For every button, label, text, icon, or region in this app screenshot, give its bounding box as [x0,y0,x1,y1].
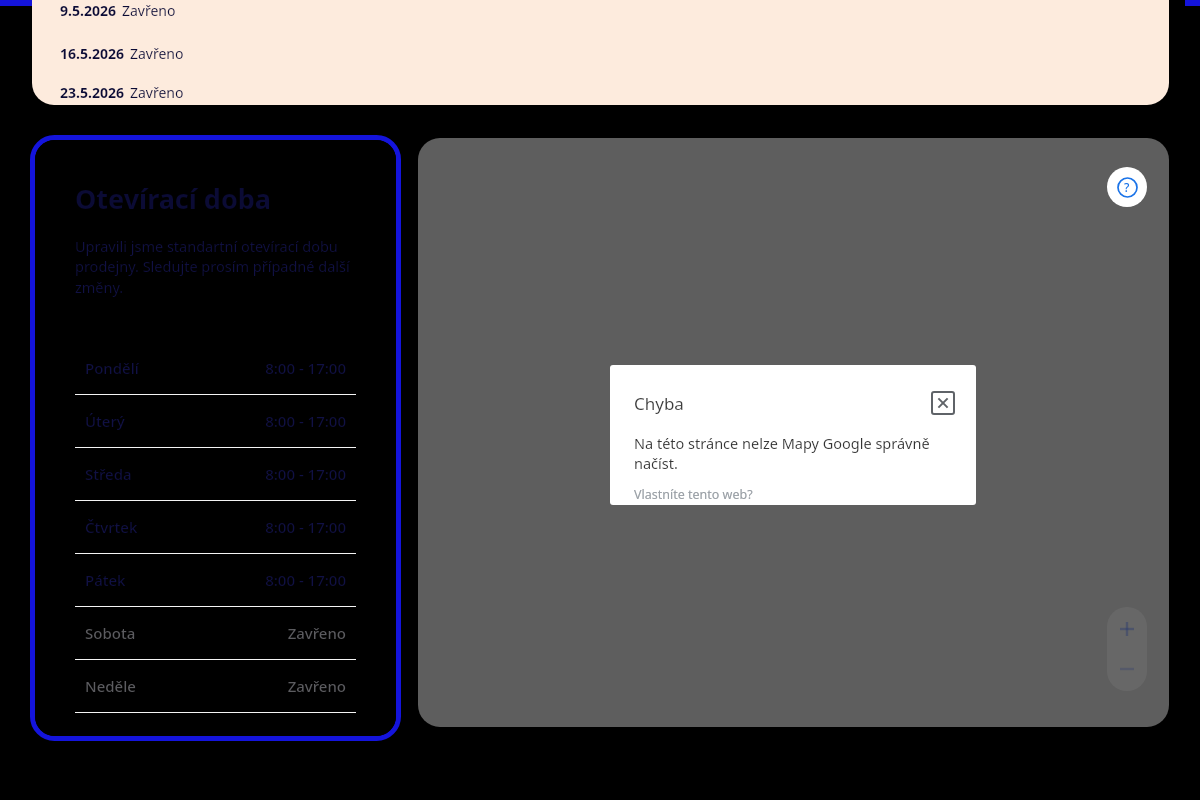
button[interactable]: Pátek [75,554,356,606]
button[interactable]: Help [1107,167,1147,207]
staticText: Pondělí [85,358,265,378]
staticText: Zavřeno [122,1,176,20]
button[interactable]: Pondělí [75,342,356,394]
button[interactable]: Vlastníte tento web? [634,486,753,503]
staticText: Otevírací doba [75,180,272,217]
staticText: 8:00 - 17:00 [265,411,346,431]
staticText: Zavřeno [130,83,184,102]
staticText: Na této stránce nelze Mapy Google správn… [634,433,956,473]
staticText: 8:00 - 17:00 [265,517,346,537]
staticText: Chyba [634,392,930,415]
button[interactable]: Čtvrtek [75,501,356,553]
staticText: Pátek [85,570,265,590]
staticText: 8:00 - 17:00 [265,570,346,590]
button[interactable]: Úterý [75,395,356,447]
button[interactable]: Sobota [75,607,356,659]
button[interactable]: Otevírací doba [35,140,396,736]
button[interactable]: Zoom in [1118,620,1136,638]
staticText: 8:00 - 17:00 [265,464,346,484]
staticText: Sobota [85,623,287,643]
staticText: Úterý [85,411,265,431]
staticText: Zavřeno [287,676,346,696]
staticText: 23.5.2026 [60,83,124,102]
button[interactable]: Neděle [75,660,356,712]
staticText: 9.5.2026 [60,1,116,20]
staticText: Středa [85,464,265,484]
staticText: Zavřeno [130,44,184,63]
button[interactable]: Close [930,390,956,416]
staticText: 8:00 - 17:00 [265,358,346,378]
staticText: Upravili jsme standartní otevírací dobu … [75,236,356,298]
staticText: Zavřeno [287,623,346,643]
button[interactable]: Středa [75,448,356,500]
button[interactable]: Zoom out [1118,660,1136,678]
staticText: 16.5.2026 [60,44,124,63]
staticText: Čtvrtek [85,517,265,537]
staticText: ? [1124,179,1130,195]
staticText: Neděle [85,676,287,696]
